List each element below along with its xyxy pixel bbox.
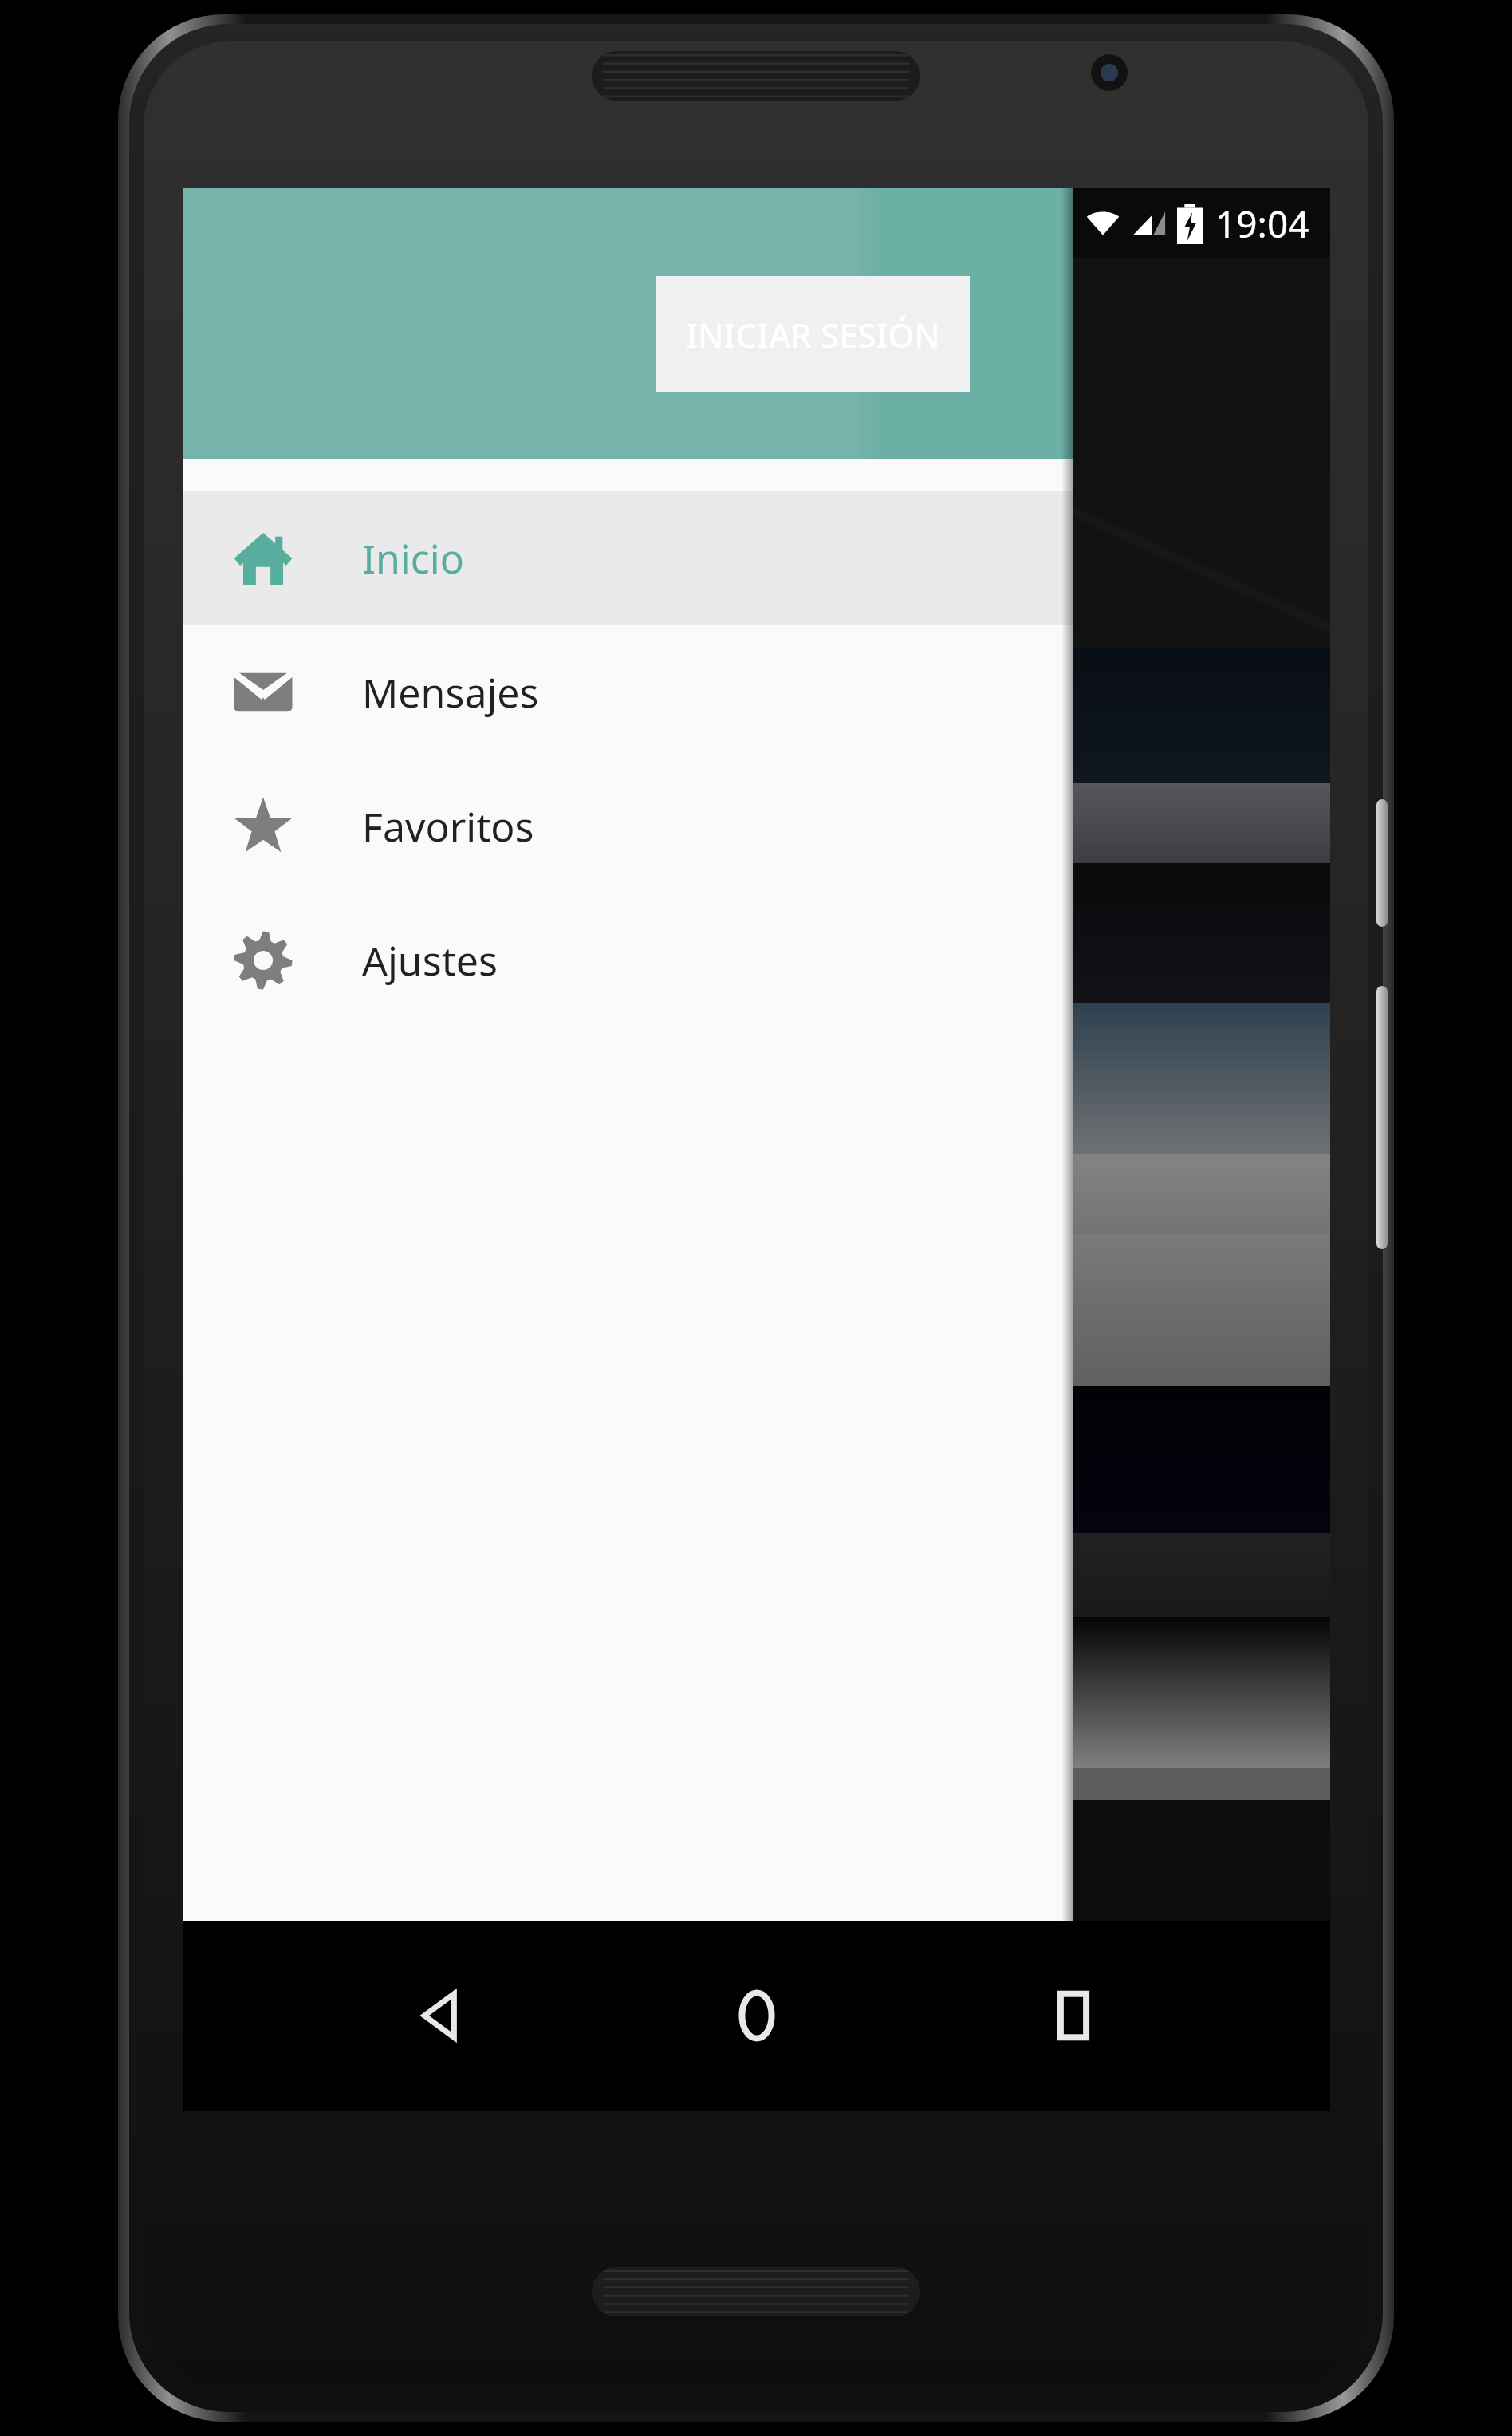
staticText: Ajustes [362, 933, 498, 987]
staticText: Mensajes [362, 665, 539, 719]
button[interactable]: Home [697, 1956, 817, 2075]
button[interactable]: Ajustes [183, 893, 1073, 1027]
button[interactable]: Inicio [183, 491, 1073, 625]
button[interactable]: Back [380, 1956, 500, 2075]
staticText: Favoritos [362, 799, 534, 853]
button[interactable]: by [183, 2031, 1073, 2111]
staticText: INICIAR SESIÓN [686, 312, 940, 357]
button[interactable]: Mensajes [183, 625, 1073, 759]
button[interactable]: INICIAR SESIÓN [656, 276, 970, 392]
button[interactable]: Favoritos [183, 759, 1073, 893]
staticText: 19:04 [1215, 199, 1309, 249]
staticText: Inicio [362, 531, 464, 585]
button[interactable]: Recent apps [1014, 1956, 1133, 2075]
